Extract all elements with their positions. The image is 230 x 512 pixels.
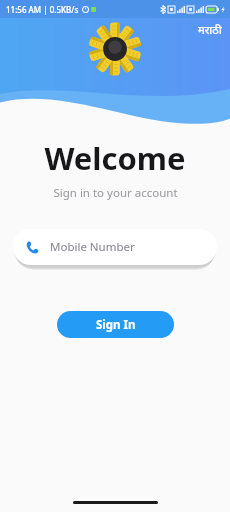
staticText: Sign In [96, 317, 136, 333]
staticText: Sign in to your account [53, 185, 178, 201]
other: Phone [26, 241, 39, 254]
other: App logo [86, 20, 144, 78]
staticText: Welcome [44, 137, 186, 179]
staticText: मराठी [198, 22, 222, 37]
staticText: 11:56 AM | 0.5KB/s [6, 4, 79, 15]
staticText: Mobile Number [50, 239, 135, 255]
button[interactable]: Sign In [57, 311, 174, 338]
button[interactable]: Phone [13, 229, 217, 265]
button[interactable]: मराठी [194, 21, 226, 38]
